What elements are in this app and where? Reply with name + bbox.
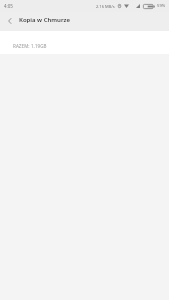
staticText: 4:05 (4, 3, 13, 9)
staticText: Kopia w Chmurze (19, 16, 70, 24)
button[interactable]: Back (0, 12, 19, 31)
staticText: 59% (157, 3, 166, 9)
staticText: RAZEM: 1.19GB (13, 43, 47, 49)
staticText: 2.16 MB/s (96, 4, 115, 9)
